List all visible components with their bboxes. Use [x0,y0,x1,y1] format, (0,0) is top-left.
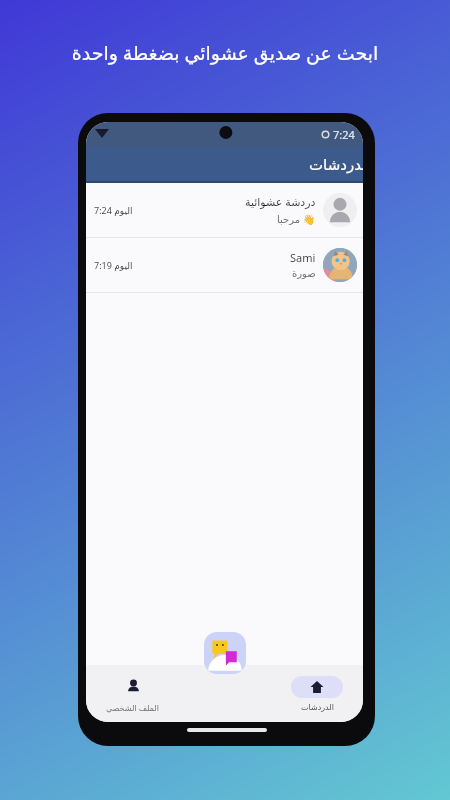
staticText: 7:24 [333,127,355,142]
other: الدردشات [310,680,324,694]
staticText: الدردشات [301,703,334,712]
staticText: مرحبا 👋 [277,212,316,226]
staticText: الملف الشخصي [106,702,159,713]
button[interactable]: الدردشات [271,676,363,712]
other: الملف الشخصي [126,679,141,694]
button[interactable]: دردشة جديدة [204,632,246,674]
staticText: صورة [292,268,316,280]
staticText: ابحث عن صديق عشوائي بضغطة واحدة [0,40,450,66]
button[interactable]: اليوم 7:24 [86,183,363,237]
staticText: الدردشات [309,156,363,173]
staticText: دردشة عشوائية [245,194,316,209]
button[interactable]: الملف الشخصي [86,675,179,713]
staticText: اليوم 7:19 [94,259,133,271]
button[interactable]: اليوم 7:19 [86,238,363,292]
staticText: اليوم 7:24 [94,204,133,216]
staticText: Sami [290,250,316,265]
